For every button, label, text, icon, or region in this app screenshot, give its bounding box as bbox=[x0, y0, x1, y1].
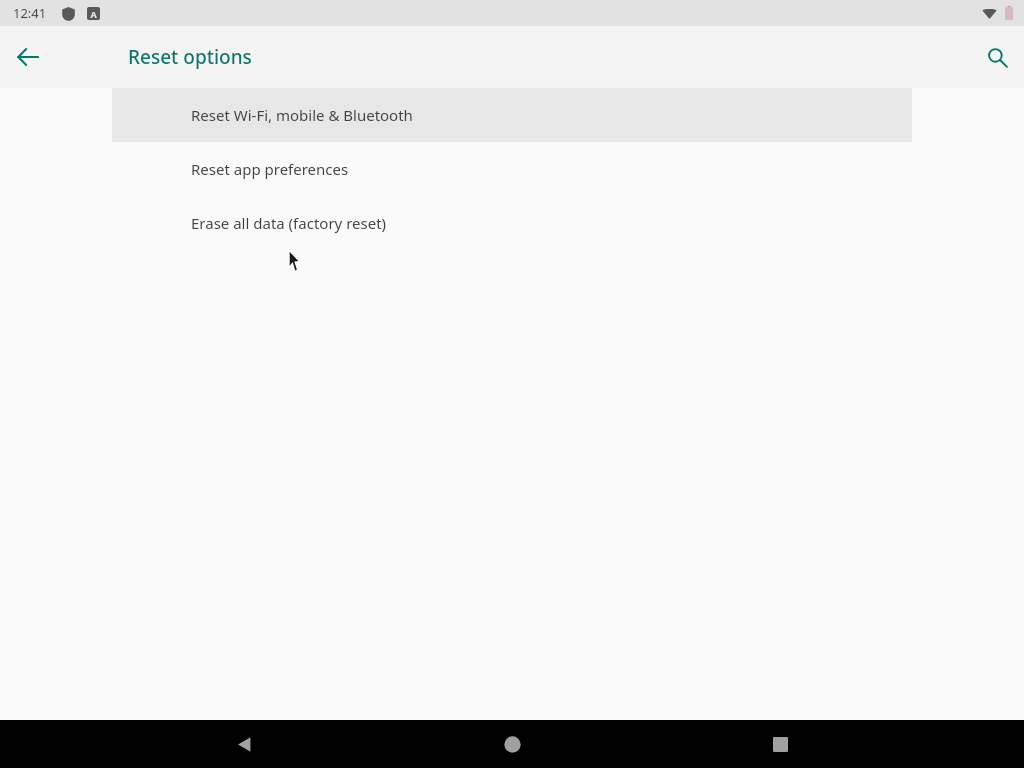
staticText: A bbox=[90, 8, 97, 20]
button[interactable]: Back bbox=[220, 720, 268, 768]
button[interactable]: Search bbox=[973, 33, 1021, 81]
button[interactable]: Recent apps bbox=[756, 720, 804, 768]
staticText: Reset options bbox=[128, 44, 252, 70]
staticText: Erase all data (factory reset) bbox=[191, 213, 387, 233]
staticText: Reset app preferences bbox=[191, 159, 349, 179]
button[interactable]: Erase all data (factory reset) bbox=[112, 196, 912, 250]
staticText: Reset Wi-Fi, mobile & Bluetooth bbox=[191, 105, 413, 125]
staticText: 12:41 bbox=[13, 4, 47, 22]
button[interactable]: Home bbox=[488, 720, 536, 768]
button[interactable]: Reset app preferences bbox=[112, 142, 912, 196]
button[interactable]: Reset Wi-Fi, mobile & Bluetooth bbox=[112, 88, 912, 142]
button[interactable]: Back bbox=[4, 33, 52, 81]
